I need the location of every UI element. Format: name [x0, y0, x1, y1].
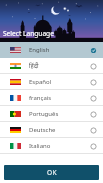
button[interactable]: OK: [4, 165, 99, 180]
button[interactable]: Español: [0, 74, 103, 90]
staticText: OK: [47, 168, 57, 177]
button[interactable]: Deutsche: [0, 122, 103, 138]
staticText: हिंदी: [29, 62, 39, 70]
button[interactable]: français: [0, 90, 103, 106]
staticText: Deutsche: [29, 126, 56, 134]
button[interactable]: हिंदी: [0, 58, 103, 74]
button[interactable]: Português: [0, 106, 103, 122]
staticText: Português: [29, 110, 59, 118]
staticText: Select Language: [3, 29, 54, 38]
button[interactable]: English: [0, 42, 103, 58]
staticText: Italiano: [29, 142, 51, 150]
staticText: Español: [29, 78, 52, 86]
staticText: English: [29, 46, 50, 54]
staticText: français: [29, 94, 52, 102]
button[interactable]: Italiano: [0, 138, 103, 154]
